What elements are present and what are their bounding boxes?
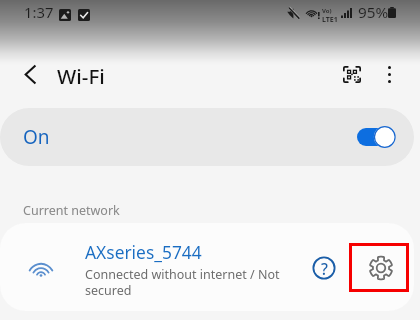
button[interactable]: More options [371,54,408,94]
staticText: Current network [23,202,120,219]
button[interactable]: On [0,108,414,166]
staticText: Wi-Fi [57,62,105,90]
staticText: On [23,124,50,150]
staticText: ? [321,258,328,279]
staticText: LTE1 [322,15,338,25]
button[interactable]: Back [10,54,50,94]
button[interactable]: Network settings [363,250,399,286]
button[interactable]: Scan QR code [332,54,372,94]
button[interactable]: AXseries_5744 [0,223,414,311]
staticText: 1:37 [24,2,54,22]
staticText: Connected without internet / Not secured [85,266,285,298]
button[interactable]: Help [306,250,342,286]
staticText: 95% [358,2,389,23]
staticText: AXseries_5744 [85,240,202,264]
staticText: Vo) [322,7,332,15]
